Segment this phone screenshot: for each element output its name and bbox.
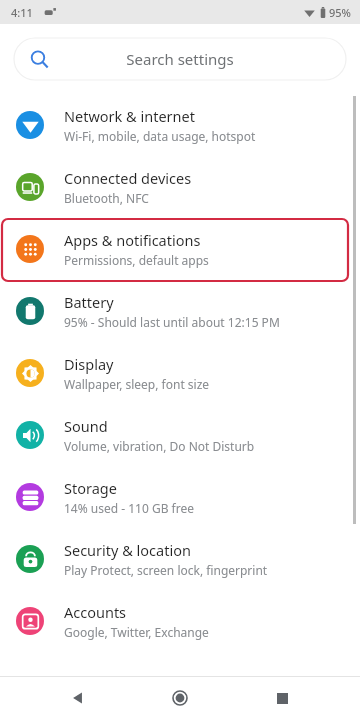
- button[interactable]: Display: [0, 342, 360, 404]
- staticText: Play Protect, screen lock, fingerprint: [64, 562, 268, 578]
- button[interactable]: Battery: [0, 280, 360, 342]
- staticText: Security & location: [64, 540, 191, 560]
- staticText: 4:11: [11, 5, 33, 20]
- staticText: Wi-Fi, mobile, data usage, hotspot: [64, 128, 256, 144]
- staticText: Sound: [64, 416, 108, 436]
- staticText: Permissions, default apps: [64, 252, 209, 268]
- staticText: Battery: [64, 292, 114, 312]
- staticText: 95% - Should last until about 12:15 PM: [64, 314, 280, 330]
- staticText: Wallpaper, sleep, font size: [64, 376, 210, 392]
- button[interactable]: Network & internet: [0, 94, 360, 156]
- button[interactable]: Back: [54, 676, 102, 720]
- staticText: Volume, vibration, Do Not Disturb: [64, 438, 255, 454]
- button[interactable]: Home: [156, 676, 204, 720]
- staticText: Network & internet: [64, 106, 195, 126]
- staticText: Accounts: [64, 602, 127, 622]
- staticText: Search settings: [49, 49, 311, 69]
- button[interactable]: Connected devices: [0, 156, 360, 218]
- button[interactable]: Sound: [0, 404, 360, 466]
- button[interactable]: Search settings: [14, 38, 346, 80]
- button[interactable]: Accounts: [0, 590, 360, 652]
- staticText: Apps & notifications: [64, 230, 201, 250]
- staticText: Display: [64, 354, 114, 374]
- staticText: Google, Twitter, Exchange: [64, 624, 209, 640]
- staticText: Bluetooth, NFC: [64, 190, 149, 206]
- button[interactable]: Apps & notifications: [0, 218, 360, 280]
- staticText: Storage: [64, 478, 117, 498]
- button[interactable]: Security & location: [0, 528, 360, 590]
- button[interactable]: Storage: [0, 466, 360, 528]
- staticText: 14% used - 110 GB free: [64, 500, 194, 516]
- staticText: Connected devices: [64, 168, 192, 188]
- staticText: 95%: [329, 5, 351, 20]
- button[interactable]: Recent apps: [258, 676, 306, 720]
